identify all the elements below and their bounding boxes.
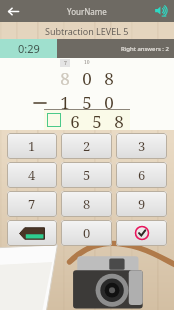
- staticText: 0: [83, 224, 91, 242]
- staticText: 3: [138, 137, 146, 155]
- staticText: 5: [83, 166, 91, 184]
- staticText: 9: [138, 195, 146, 213]
- staticText: 8: [83, 195, 91, 213]
- button[interactable]: 5: [61, 162, 112, 188]
- staticText: 10: [84, 59, 90, 66]
- staticText: 0: [104, 91, 114, 114]
- staticText: 4: [28, 166, 36, 184]
- button[interactable]: 2: [61, 133, 112, 159]
- staticText: YourName: [67, 6, 107, 17]
- staticText: 5: [82, 91, 92, 114]
- button[interactable]: Check answer: [116, 220, 167, 246]
- staticText: 1: [28, 137, 36, 155]
- button[interactable]: 4: [7, 162, 57, 188]
- button[interactable]: 3: [116, 133, 167, 159]
- button[interactable]: 6: [116, 162, 167, 188]
- staticText: 1: [60, 91, 70, 114]
- button[interactable]: 9: [116, 191, 167, 217]
- staticText: 7: [28, 195, 36, 213]
- staticText: 6: [70, 110, 80, 130]
- button[interactable]: 7: [7, 191, 57, 217]
- staticText: Right answers : 2: [121, 45, 169, 53]
- button[interactable]: 0: [61, 220, 112, 246]
- staticText: 5: [92, 110, 102, 130]
- button[interactable]: Back: [0, 0, 26, 22]
- staticText: 8: [114, 110, 124, 130]
- staticText: Subtraction LEVEL 5: [45, 25, 129, 37]
- staticText: 8: [60, 67, 70, 90]
- button[interactable]: 1: [7, 133, 57, 159]
- staticText: 0: [82, 67, 92, 90]
- button[interactable]: 8: [61, 191, 112, 217]
- staticText: 2: [83, 137, 91, 155]
- staticText: 8: [104, 67, 114, 90]
- button[interactable]: Sound: [148, 0, 174, 22]
- staticText: 6: [138, 166, 146, 184]
- button[interactable]: Delete: [7, 220, 57, 246]
- staticText: 0:29: [18, 41, 40, 56]
- staticText: 7: [64, 60, 67, 67]
